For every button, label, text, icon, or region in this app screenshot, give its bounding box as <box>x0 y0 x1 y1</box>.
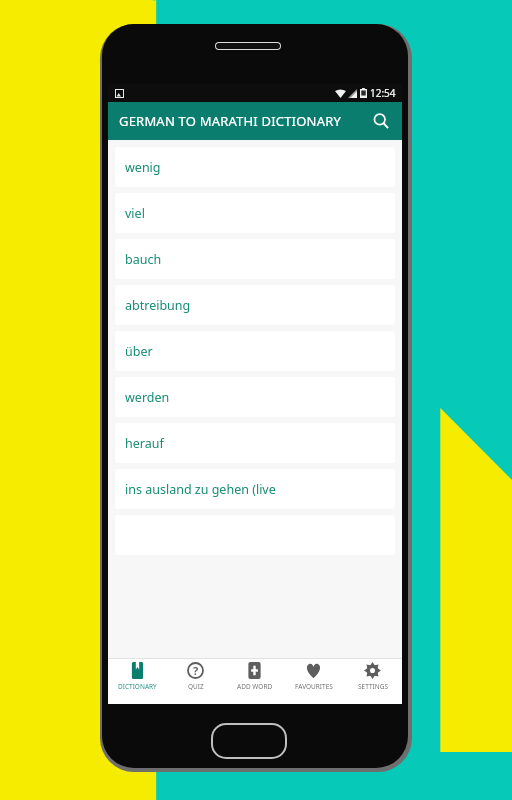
staticText: ? <box>193 663 199 678</box>
button[interactable]: herauf <box>115 423 395 463</box>
button[interactable]: abtreibung <box>115 285 395 325</box>
button[interactable]: wenig <box>115 147 395 187</box>
staticText: herauf <box>125 435 164 452</box>
button[interactable]: werden <box>115 377 395 417</box>
staticText: GERMAN TO MARATHI DICTIONARY <box>119 112 341 130</box>
button[interactable]: über <box>115 331 395 371</box>
button[interactable]: Search <box>366 106 396 136</box>
button[interactable]: DICTIONARY <box>108 662 166 704</box>
button[interactable]: ADD WORD <box>225 662 284 704</box>
staticText: FAVOURITES <box>295 682 333 691</box>
staticText: 12:54 <box>370 86 396 100</box>
staticText: werden <box>125 389 170 406</box>
staticText: ADD WORD <box>237 682 273 691</box>
button[interactable]: bauch <box>115 239 395 279</box>
button[interactable]: FAVOURITES <box>284 662 343 704</box>
staticText: bauch <box>125 251 162 268</box>
staticText: über <box>125 343 153 360</box>
staticText: ins ausland zu gehen (live <box>125 481 276 498</box>
staticText: abtreibung <box>125 297 191 314</box>
staticText: wenig <box>125 159 161 176</box>
staticText: viel <box>125 205 145 222</box>
staticText: SETTINGS <box>358 682 388 691</box>
button[interactable]: ins ausland zu gehen (live <box>115 469 395 509</box>
button[interactable]: ? <box>166 662 225 704</box>
button[interactable]: SETTINGS <box>343 662 402 704</box>
staticText: DICTIONARY <box>118 682 157 691</box>
staticText: QUIZ <box>188 682 204 691</box>
button[interactable]: viel <box>115 193 395 233</box>
